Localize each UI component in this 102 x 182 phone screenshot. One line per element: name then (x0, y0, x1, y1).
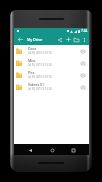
button[interactable]: Add (64, 34, 72, 45)
button[interactable]: Recent apps (68, 145, 78, 155)
staticText: Pics (28, 70, 35, 75)
button[interactable]: Back (25, 145, 35, 155)
button[interactable]: Home (47, 145, 57, 155)
staticText: 7:24 (81, 29, 88, 33)
button[interactable]: Back (15, 34, 25, 45)
staticText: Docs (28, 46, 37, 51)
staticText: Jul 30, 2015 3:13:14 (28, 87, 52, 91)
staticText: Jul 30, 2015 3:13:14 (28, 63, 52, 67)
staticText: Jul 30, 2015 3:13:14 (28, 51, 52, 55)
button[interactable]: Item options (78, 57, 87, 69)
button[interactable]: Share (56, 34, 64, 45)
staticText: My Drive (27, 37, 43, 42)
button[interactable]: More options (80, 34, 88, 45)
staticText: Misc (28, 58, 36, 63)
button[interactable]: Item options (78, 45, 87, 57)
button[interactable]: Item options (78, 81, 87, 93)
staticText: Videos 01 (28, 82, 45, 87)
button[interactable]: Pics (14, 69, 89, 81)
button[interactable]: Videos 01 (14, 81, 89, 93)
button[interactable]: Misc (14, 57, 89, 69)
button[interactable]: Item options (78, 69, 87, 81)
staticText: Jul 30, 2015 3:13:14 (28, 75, 52, 79)
button[interactable]: New folder (72, 34, 80, 45)
button[interactable]: Docs (14, 45, 89, 57)
